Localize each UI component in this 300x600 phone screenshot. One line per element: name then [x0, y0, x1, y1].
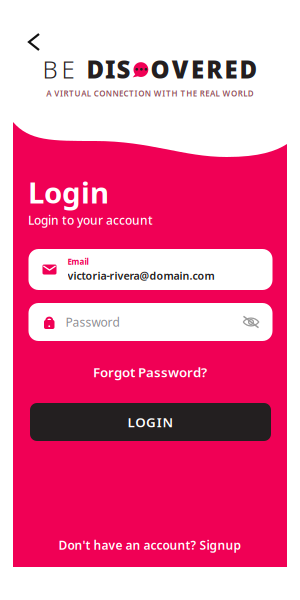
staticText: U: [75, 88, 81, 99]
staticText: I: [157, 413, 162, 431]
staticText: W: [154, 88, 162, 99]
staticText: G: [146, 413, 156, 431]
staticText: Don't have an account? Signup: [58, 537, 241, 553]
staticText: T: [166, 88, 171, 99]
staticText: Password: [65, 314, 119, 330]
staticText: O: [99, 88, 105, 99]
staticText: Login to your account: [28, 212, 153, 228]
staticText: Email: [67, 256, 88, 267]
staticText: O: [151, 53, 170, 85]
staticText: L: [87, 88, 91, 99]
staticText: R: [206, 53, 222, 85]
staticText: W: [222, 88, 230, 99]
staticText: A: [46, 88, 51, 99]
staticText: A: [81, 88, 86, 99]
staticText: N: [145, 88, 151, 99]
staticText: N: [112, 88, 118, 99]
staticText: B: [42, 53, 57, 85]
staticText: D: [86, 53, 104, 85]
staticText: I: [162, 88, 165, 99]
staticText: I: [135, 88, 138, 99]
staticText: I: [60, 88, 63, 99]
staticText: D: [248, 88, 254, 99]
button[interactable]: L: [30, 403, 271, 441]
staticText: H: [171, 88, 177, 99]
staticText: E: [191, 53, 204, 85]
staticText: O: [231, 88, 237, 99]
button[interactable]: Forgot Password?: [13, 361, 287, 383]
staticText: E: [61, 53, 74, 85]
staticText: E: [193, 88, 197, 99]
staticText: A: [210, 88, 215, 99]
staticText: E: [224, 53, 237, 85]
staticText: C: [94, 88, 99, 99]
staticText: R: [238, 88, 243, 99]
button[interactable]: Don't have an account? Signup: [13, 535, 287, 555]
staticText: H: [186, 88, 192, 99]
staticText: T: [129, 88, 134, 99]
staticText: N: [106, 88, 112, 99]
staticText: E: [205, 88, 209, 99]
staticText: Login: [28, 172, 109, 211]
button[interactable]: Back: [17, 22, 51, 62]
staticText: I: [105, 53, 116, 85]
staticText: O: [135, 413, 145, 431]
staticText: [91, 88, 93, 99]
staticText: L: [127, 413, 134, 431]
staticText: R: [63, 88, 68, 99]
staticText: S: [117, 53, 131, 85]
staticText: O: [138, 88, 144, 99]
staticText: L: [215, 88, 219, 99]
staticText: Forgot Password?: [93, 363, 207, 381]
staticText: C: [123, 88, 128, 99]
staticText: E: [119, 88, 123, 99]
staticText: R: [200, 88, 205, 99]
staticText: D: [240, 53, 258, 85]
staticText: N: [163, 413, 174, 431]
staticText: T: [181, 88, 186, 99]
staticText: V: [172, 53, 189, 85]
staticText: V: [54, 88, 59, 99]
staticText: L: [243, 88, 247, 99]
staticText: victoria-rivera@domain.com: [67, 268, 214, 283]
staticText: T: [69, 88, 74, 99]
